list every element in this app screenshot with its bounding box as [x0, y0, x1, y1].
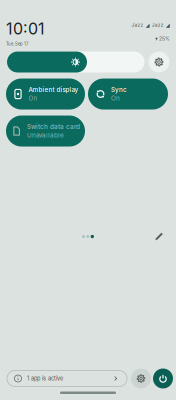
staticText: Jazz: [132, 22, 144, 28]
button[interactable]: Settings: [148, 51, 169, 72]
staticText: Tue, Sep 17: [6, 41, 28, 47]
button[interactable]: Ambient display: [6, 78, 85, 109]
button[interactable]: Edit: [154, 231, 164, 241]
button[interactable]: Switch data card: [6, 115, 85, 146]
staticText: Switch data card: [27, 123, 80, 130]
staticText: Sync: [111, 86, 127, 93]
staticText: On: [28, 94, 37, 102]
staticText: On: [111, 94, 120, 102]
staticText: Unavailable: [27, 131, 64, 139]
button[interactable]: 1 app is active: [7, 370, 127, 386]
button[interactable]: Power: [153, 368, 173, 388]
staticText: 10:01: [6, 19, 45, 38]
staticText: 25%: [159, 36, 170, 42]
button[interactable]: Sync: [88, 78, 168, 109]
staticText: 1 app is active: [27, 375, 63, 382]
staticText: Ambient display: [28, 86, 78, 93]
button[interactable]: Settings: [131, 368, 151, 388]
staticText: Jazz: [152, 22, 164, 28]
